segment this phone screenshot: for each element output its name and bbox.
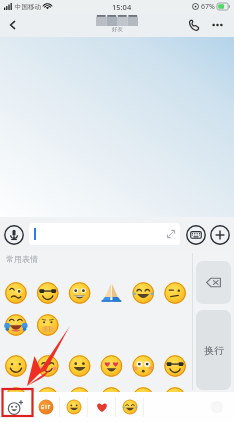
button[interactable]: Add emoji bbox=[0, 392, 31, 422]
button[interactable]: Laugh stickers bbox=[116, 392, 143, 422]
button[interactable]: GIF stickers bbox=[32, 392, 59, 422]
staticText: 常用表情 bbox=[6, 254, 38, 264]
staticText: 中国移动 bbox=[15, 3, 41, 11]
button[interactable]: More options bbox=[207, 15, 227, 35]
staticText: 67% bbox=[201, 2, 215, 12]
button[interactable]: Backspace bbox=[196, 261, 231, 304]
button[interactable]: Keyboard bbox=[185, 224, 206, 245]
button[interactable]: 换行 bbox=[196, 310, 231, 390]
staticText: 换行 bbox=[204, 344, 224, 357]
button[interactable]: Back bbox=[0, 13, 26, 37]
button[interactable]: Voice message bbox=[3, 224, 24, 245]
button[interactable]: Add bbox=[209, 224, 230, 245]
staticText: 好友 bbox=[112, 26, 123, 33]
button[interactable]: Call bbox=[184, 15, 204, 35]
button[interactable]: Smiley stickers bbox=[60, 392, 87, 422]
button[interactable] bbox=[29, 223, 180, 245]
button[interactable]: Heart stickers bbox=[88, 392, 115, 422]
staticText: 15:04 bbox=[112, 2, 132, 12]
